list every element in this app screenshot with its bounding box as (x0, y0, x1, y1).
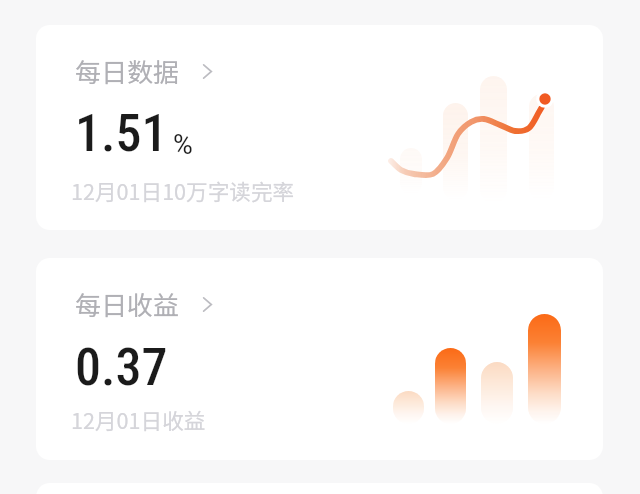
staticText: 0.37 (75, 337, 168, 398)
other: More (202, 297, 213, 312)
staticText: 每日收益 (75, 285, 180, 323)
staticText: % (173, 129, 193, 161)
staticText: 每日数据 (75, 52, 180, 90)
staticText: 12月01日收益 (71, 404, 206, 435)
button[interactable]: 每日数据 (75, 52, 213, 90)
staticText: 12月01日10万字读完率 (71, 175, 295, 206)
button[interactable]: 每日数据 (36, 25, 603, 230)
button[interactable]: 每日收益 (36, 258, 603, 460)
other: More (202, 64, 213, 79)
staticText: 1.51 (75, 103, 168, 164)
button[interactable]: 每日收益 (75, 285, 213, 323)
